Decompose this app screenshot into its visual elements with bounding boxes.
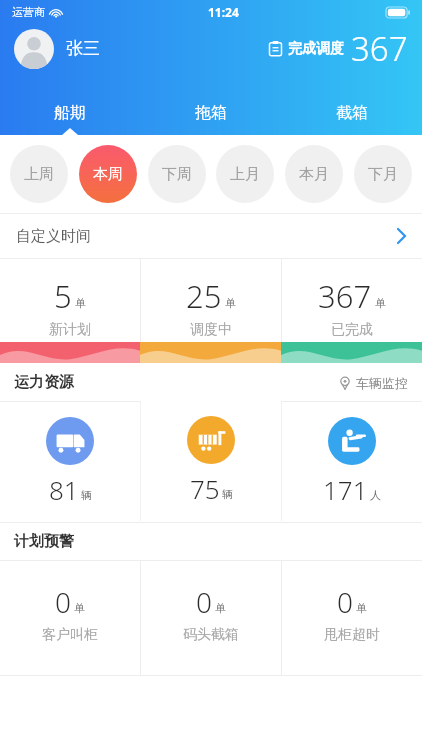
button[interactable]: 自定义时间 [0, 214, 422, 258]
staticText: 新计划 [49, 321, 91, 339]
staticText: 25 [186, 275, 222, 317]
button[interactable]: 车辆监控 [338, 375, 408, 391]
staticText: 11:24 [208, 4, 239, 20]
staticText: 上周 [24, 165, 54, 184]
staticText: 单 [215, 601, 226, 615]
staticText: 已完成 [331, 321, 373, 339]
staticText: 车辆监控 [356, 375, 408, 391]
staticText: 单 [225, 296, 236, 310]
staticText: 5 [54, 275, 72, 317]
staticText: 本月 [299, 165, 329, 184]
button[interactable]: 上月 [216, 145, 274, 203]
button[interactable]: 完成调度 [268, 26, 408, 71]
staticText: 运营商 [12, 5, 45, 19]
staticText: 运力资源 [14, 373, 74, 392]
button[interactable]: 上周 [10, 145, 68, 203]
button[interactable]: 本月 [285, 145, 343, 203]
button[interactable]: 25 [140, 259, 281, 363]
button[interactable]: 0 [281, 561, 422, 675]
button[interactable] [14, 29, 54, 69]
button[interactable]: 367 [281, 259, 422, 363]
button[interactable]: 截箱 [281, 91, 422, 135]
button[interactable]: 0 [140, 561, 281, 675]
staticText: 辆 [222, 487, 233, 501]
staticText: 张三 [66, 38, 100, 59]
staticText: 完成调度 [288, 40, 344, 58]
button[interactable]: 0 [0, 561, 140, 675]
button[interactable]: 171 [281, 402, 422, 522]
staticText: 0 [55, 583, 71, 621]
button[interactable]: 下周 [148, 145, 206, 203]
staticText: 81 [49, 472, 79, 507]
button[interactable]: 75 [140, 401, 282, 521]
staticText: 码头截箱 [183, 626, 239, 644]
staticText: 自定义时间 [16, 227, 91, 246]
staticText: 0 [196, 583, 212, 621]
staticText: 367 [351, 26, 408, 71]
staticText: 甩柜超时 [324, 626, 380, 644]
staticText: 客户叫柜 [42, 626, 98, 644]
button[interactable]: 下月 [354, 145, 412, 203]
button[interactable]: 本周 [79, 145, 137, 203]
staticText: 单 [75, 296, 86, 310]
staticText: 辆 [81, 488, 92, 502]
button[interactable]: 81 [0, 402, 140, 522]
staticText: 调度中 [190, 321, 232, 339]
staticText: 单 [356, 601, 367, 615]
staticText: 人 [370, 488, 381, 502]
staticText: 船期 [54, 103, 86, 123]
staticText: 截箱 [336, 103, 368, 123]
button[interactable]: 拖箱 [140, 91, 281, 135]
staticText: 下月 [368, 165, 398, 184]
staticText: 0 [337, 583, 353, 621]
staticText: 本周 [93, 165, 123, 184]
staticText: 367 [318, 275, 372, 317]
staticText: 计划预警 [14, 532, 74, 551]
button[interactable]: 船期 [0, 91, 140, 135]
staticText: 单 [375, 296, 386, 310]
staticText: 下周 [162, 165, 192, 184]
staticText: 拖箱 [195, 103, 227, 123]
staticText: 上月 [230, 165, 260, 184]
staticText: 单 [74, 601, 85, 615]
button[interactable]: 5 [0, 259, 140, 363]
staticText: 75 [190, 471, 220, 506]
staticText: 171 [323, 472, 368, 507]
